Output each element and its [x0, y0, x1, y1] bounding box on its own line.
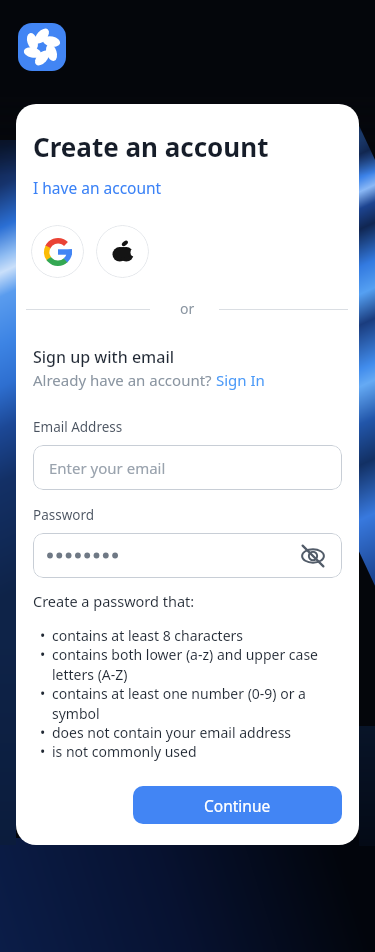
staticText: Sign In [216, 370, 265, 390]
button[interactable]: I have an account [33, 177, 162, 198]
staticText: Create an account [33, 129, 269, 164]
staticText: • [40, 742, 52, 761]
staticText: contains at least 8 characters [52, 626, 244, 645]
button[interactable]: Sign In [216, 370, 265, 390]
staticText: • [40, 626, 52, 645]
button[interactable]: Enter your email [33, 445, 342, 490]
button[interactable] [96, 225, 149, 278]
staticText: • [40, 645, 52, 664]
button[interactable] [33, 533, 342, 578]
staticText: contains at least one number (0-9) or a … [52, 684, 306, 723]
staticText: Password [33, 506, 95, 524]
staticText: contains both lower (a-z) and upper case… [52, 645, 319, 684]
staticText: Already have an account? [33, 370, 216, 390]
staticText: or [180, 299, 195, 318]
staticText: does not contain your email address [52, 723, 292, 742]
staticText: I have an account [33, 177, 162, 198]
staticText: Enter your email [49, 458, 166, 478]
button[interactable] [31, 225, 84, 278]
button[interactable]: Continue [133, 786, 342, 824]
staticText: • [40, 684, 52, 703]
staticText: Create a password that: [33, 591, 195, 611]
staticText: Continue [204, 795, 271, 816]
staticText: is not commonly used [52, 742, 197, 761]
staticText: Email Address [33, 418, 123, 436]
staticText: Sign up with email [33, 346, 175, 368]
button[interactable] [300, 543, 326, 569]
staticText: • [40, 723, 52, 742]
